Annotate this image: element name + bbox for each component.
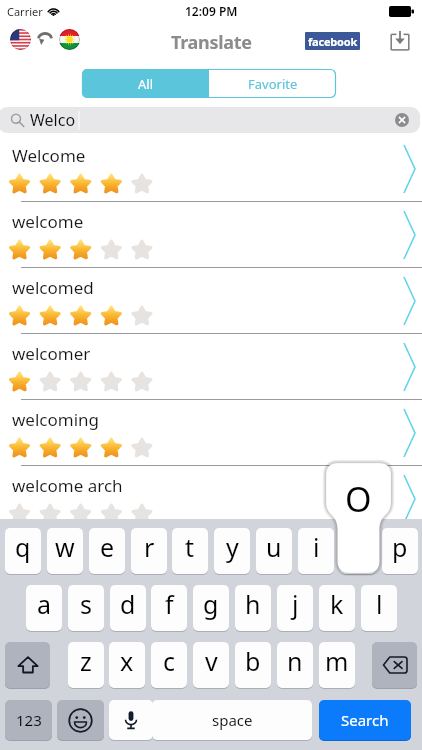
- staticText: facebook: [308, 34, 358, 49]
- staticText: welcome arch: [12, 474, 123, 497]
- button[interactable]: b: [235, 642, 271, 688]
- button[interactable]: Space: [152, 700, 312, 740]
- staticText: z: [80, 644, 92, 678]
- button[interactable]: welcome arch: [0, 466, 422, 532]
- button[interactable]: e: [89, 528, 125, 574]
- staticText: Carrier: [7, 4, 43, 19]
- staticText: v: [205, 644, 218, 678]
- staticText: n: [287, 644, 303, 678]
- button[interactable]: Target language Kurdish: [59, 29, 80, 50]
- staticText: l: [376, 587, 383, 621]
- button[interactable]: c: [151, 642, 187, 688]
- button[interactable]: h: [235, 585, 271, 631]
- staticText: g: [203, 587, 219, 621]
- staticText: a: [37, 587, 52, 621]
- staticText: t: [185, 530, 195, 564]
- staticText: r: [144, 530, 155, 564]
- button[interactable]: s: [68, 585, 104, 631]
- button[interactable]: j: [277, 585, 313, 631]
- staticText: Translate: [171, 30, 252, 55]
- button[interactable]: Dictation: [109, 700, 153, 740]
- button[interactable]: k: [319, 585, 355, 631]
- staticText: welcoming: [12, 408, 100, 431]
- button[interactable]: Welcome: [0, 136, 422, 202]
- button[interactable]: Emoji: [57, 700, 104, 740]
- button[interactable]: u: [256, 528, 292, 574]
- button[interactable]: Numbers: [5, 700, 52, 740]
- button[interactable]: Swap languages: [37, 31, 53, 47]
- staticText: welcomed: [12, 276, 94, 299]
- button[interactable]: z: [68, 642, 104, 688]
- button[interactable]: f: [151, 585, 187, 631]
- button[interactable]: Download: [389, 31, 411, 52]
- staticText: 123: [16, 710, 42, 730]
- button[interactable]: v: [193, 642, 229, 688]
- button[interactable]: Backspace: [372, 642, 417, 688]
- staticText: m: [325, 644, 349, 678]
- staticText: h: [245, 587, 261, 621]
- button[interactable]: t: [172, 528, 208, 574]
- staticText: w: [55, 530, 75, 564]
- button[interactable]: welcomer: [0, 334, 422, 400]
- button[interactable]: Source language English: [10, 29, 31, 50]
- staticText: q: [15, 530, 31, 564]
- staticText: f: [165, 587, 174, 621]
- button[interactable]: p: [382, 528, 418, 574]
- button[interactable]: Shift: [5, 642, 50, 688]
- staticText: i: [313, 530, 320, 564]
- staticText: All: [138, 75, 154, 93]
- staticText: j: [292, 587, 299, 621]
- staticText: e: [100, 530, 115, 564]
- staticText: 12:09 PM: [185, 3, 238, 19]
- button[interactable]: l: [361, 585, 397, 631]
- button[interactable]: x: [109, 642, 145, 688]
- button[interactable]: Favorite: [209, 69, 336, 98]
- button[interactable]: a: [26, 585, 62, 631]
- button[interactable]: Search: [319, 700, 411, 740]
- button[interactable]: facebook: [305, 32, 360, 50]
- button[interactable]: welcoming: [0, 400, 422, 466]
- staticText: Favorite: [248, 75, 298, 93]
- button[interactable]: i: [298, 528, 334, 574]
- staticText: p: [392, 530, 408, 564]
- button[interactable]: w: [47, 528, 83, 574]
- staticText: Welcome: [12, 144, 86, 167]
- staticText: x: [120, 644, 134, 678]
- staticText: b: [245, 644, 261, 678]
- staticText: Welco: [30, 109, 76, 131]
- button[interactable]: All: [82, 69, 209, 98]
- staticText: Search: [341, 710, 389, 730]
- button[interactable]: welcomed: [0, 268, 422, 334]
- button[interactable]: r: [131, 528, 167, 574]
- staticText: u: [266, 530, 282, 564]
- button[interactable]: y: [214, 528, 250, 574]
- staticText: c: [163, 644, 176, 678]
- staticText: welcomer: [12, 342, 91, 365]
- button[interactable]: d: [110, 585, 146, 631]
- button[interactable]: Clear search: [395, 113, 409, 127]
- staticText: s: [80, 587, 92, 621]
- button[interactable]: o: [340, 528, 376, 574]
- staticText: welcome: [12, 210, 84, 233]
- button[interactable]: n: [277, 642, 313, 688]
- staticText: y: [226, 530, 239, 564]
- staticText: k: [330, 587, 344, 621]
- staticText: space: [212, 710, 253, 730]
- staticText: O: [345, 476, 372, 522]
- button[interactable]: q: [5, 528, 41, 574]
- button[interactable]: g: [193, 585, 229, 631]
- button[interactable]: welcome: [0, 202, 422, 268]
- staticText: d: [120, 587, 136, 621]
- button[interactable]: m: [319, 642, 355, 688]
